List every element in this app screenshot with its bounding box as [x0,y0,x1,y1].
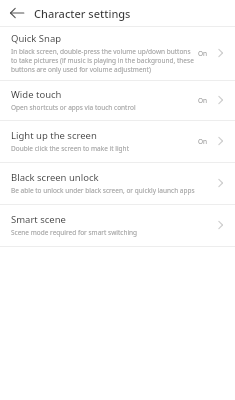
staticText: On [197,137,207,146]
staticText: Smart scene [11,213,66,226]
staticText: Character settings [34,6,131,21]
button[interactable]: Quick Snap [0,27,235,80]
staticText: to take pictures (if music is playing in… [11,56,194,65]
staticText: Scene mode required for smart switching [11,228,138,237]
staticText: Quick Snap [11,32,62,45]
staticText: Black screen unlock [11,171,99,184]
button[interactable]: Back [7,3,27,23]
button[interactable]: Wide touch [0,81,235,120]
staticText: On [197,96,207,105]
staticText: On [197,49,207,58]
staticText: Wide touch [11,88,62,101]
button[interactable]: Black screen unlock [0,163,235,204]
staticText: Be able to unlock under black screen, or… [11,186,195,195]
staticText: buttons are only used for volume adjustm… [11,65,151,74]
staticText: In black screen, double-press the volume… [11,47,191,56]
button[interactable]: Light up the screen [0,121,235,162]
staticText: Light up the screen [11,129,97,142]
staticText: Open shortcuts or apps via touch control [11,103,136,112]
staticText: Double click the screen to make it light [11,144,129,153]
button[interactable]: Smart scene [0,205,235,246]
